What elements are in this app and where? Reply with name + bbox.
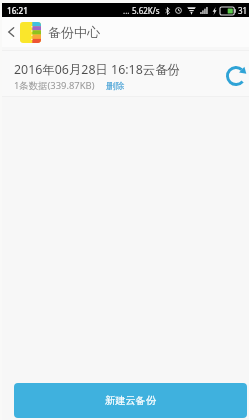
staticText: 16:21 <box>7 5 28 16</box>
staticText: 2016年06月28日 16:18云备份 <box>14 61 180 78</box>
button[interactable]: 删除 <box>105 80 126 92</box>
staticText: 1条数据(339.87KB) <box>14 79 95 92</box>
staticText: 新建云备份 <box>105 394 156 407</box>
staticText: ... <box>123 5 130 16</box>
staticText: 5.62K/s <box>132 5 160 16</box>
button[interactable]: 2016年06月28日 16:18云备份 <box>2 51 249 96</box>
staticText: 删除 <box>106 80 125 92</box>
staticText: 备份中心 <box>48 24 100 40</box>
button[interactable]: 新建云备份 <box>14 383 247 418</box>
button[interactable]: Refresh <box>223 59 249 93</box>
button[interactable]: Back <box>2 17 20 47</box>
staticText: 31 <box>238 5 248 16</box>
